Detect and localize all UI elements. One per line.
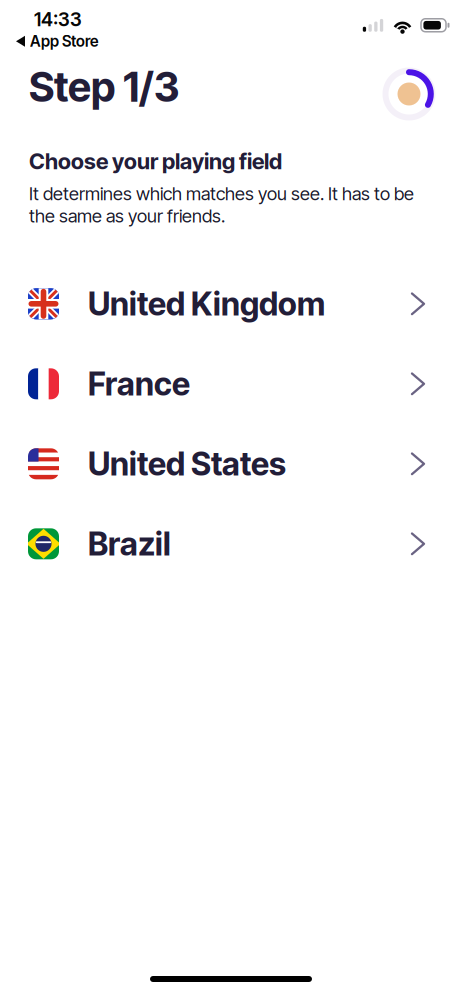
button[interactable]: United Kingdom <box>0 264 462 344</box>
staticText: App Store <box>30 32 98 51</box>
staticText: France <box>88 364 190 403</box>
staticText: It determines which matches you see. It … <box>29 183 414 227</box>
button[interactable]: Brazil <box>0 504 462 584</box>
staticText: Step 1/3 <box>29 62 179 112</box>
staticText: Brazil <box>88 524 171 563</box>
staticText: United States <box>88 444 286 483</box>
staticText: 14:33 <box>34 8 82 31</box>
staticText: United Kingdom <box>88 284 325 323</box>
button[interactable]: France <box>0 344 462 424</box>
button[interactable]: United States <box>0 424 462 504</box>
staticText: Choose your playing field <box>29 148 282 175</box>
